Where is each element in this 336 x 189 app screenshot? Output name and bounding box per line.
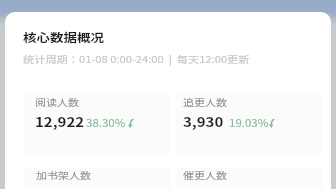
staticText: 统计周期：01-08 0:00-24:00 | 每天12:00更新: [23, 52, 250, 66]
button[interactable]: 阅读人数 38.30%: [24, 92, 171, 156]
other: Trending down: [128, 119, 133, 128]
button[interactable]: 加书架人数: [24, 167, 171, 189]
other: Trending down: [269, 119, 274, 128]
staticText: 38.30%: [86, 116, 126, 131]
button[interactable]: 催更人数: [176, 167, 323, 189]
staticText: 阅读人数: [35, 95, 79, 109]
staticText: 核心数据概况: [23, 28, 104, 45]
staticText: 催更人数: [183, 168, 227, 182]
button[interactable]: 追更人数 19.03%: [176, 92, 323, 156]
staticText: 加书架人数: [36, 168, 91, 182]
staticText: 追更人数: [183, 95, 227, 109]
staticText: 12,922: [35, 113, 85, 131]
staticText: 3,930: [183, 113, 224, 131]
staticText: 19.03%: [229, 116, 269, 131]
